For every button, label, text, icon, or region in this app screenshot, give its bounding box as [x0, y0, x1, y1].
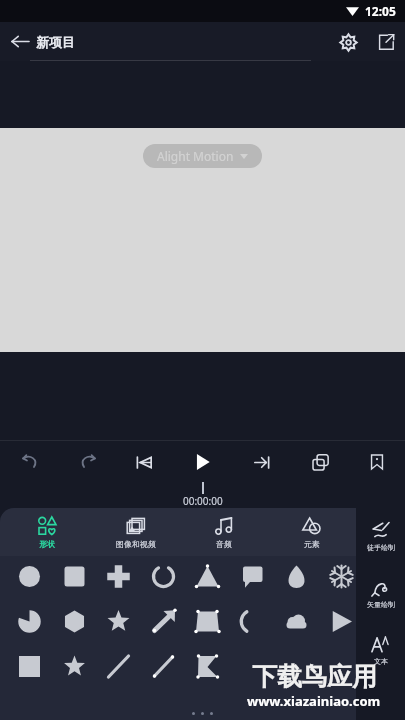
- staticText: www.xiazainiao.com: [247, 692, 381, 710]
- staticText: 新项目: [36, 34, 75, 50]
- staticText: 形状: [39, 539, 55, 549]
- button[interactable]: Shape 15: [276, 601, 316, 641]
- button[interactable]: Shape 18: [54, 646, 94, 686]
- staticText: 文本: [374, 657, 388, 666]
- button[interactable]: Shape 10: [54, 601, 94, 641]
- button[interactable]: Shape 3: [98, 556, 138, 596]
- button[interactable]: 图像和视频: [92, 508, 180, 556]
- button[interactable]: Settings: [329, 23, 367, 61]
- button[interactable]: Shape 11: [98, 601, 138, 641]
- staticText: 矢量绘制: [367, 600, 395, 609]
- button[interactable]: Shape 9: [9, 601, 49, 641]
- button[interactable]: Alight Motion: [143, 144, 262, 168]
- button[interactable]: Shape 1: [9, 556, 49, 596]
- staticText: Alight Motion: [157, 148, 234, 164]
- staticText: 00:00:00: [183, 494, 223, 508]
- button[interactable]: Shape 21: [187, 646, 227, 686]
- button[interactable]: Shape 12: [143, 601, 183, 641]
- button[interactable]: Loop: [301, 443, 339, 481]
- button[interactable]: 元素: [268, 508, 356, 556]
- button[interactable]: Shape 6: [232, 556, 272, 596]
- button[interactable]: 形状: [3, 508, 91, 556]
- button[interactable]: Shape 14: [232, 601, 272, 641]
- button[interactable]: Jump to start: [124, 443, 162, 481]
- button[interactable]: Undo: [11, 443, 49, 481]
- button[interactable]: 文本: [356, 622, 405, 679]
- button[interactable]: Shape 13: [187, 601, 227, 641]
- button[interactable]: Shape 17: [9, 646, 49, 686]
- button[interactable]: 徒手绘制: [356, 508, 405, 565]
- button[interactable]: 矢量绘制: [356, 565, 405, 622]
- staticText: 徒手绘制: [367, 543, 395, 552]
- button[interactable]: Shape 2: [54, 556, 94, 596]
- button[interactable]: Redo: [69, 443, 107, 481]
- staticText: 图像和视频: [116, 539, 156, 549]
- staticText: 下载鸟应用: [252, 661, 377, 692]
- button[interactable]: Shape 7: [276, 556, 316, 596]
- staticText: 元素: [304, 539, 320, 549]
- button[interactable]: Shape 4: [143, 556, 183, 596]
- staticText: 音频: [216, 539, 232, 549]
- button[interactable]: Shape 20: [143, 646, 183, 686]
- button[interactable]: Play: [184, 443, 222, 481]
- button[interactable]: Share: [367, 23, 405, 61]
- button[interactable]: Shape 5: [187, 556, 227, 596]
- button[interactable]: Shape 19: [98, 646, 138, 686]
- button[interactable]: Bookmark: [358, 443, 396, 481]
- button[interactable]: Jump to end: [243, 443, 281, 481]
- button[interactable]: Back: [0, 22, 40, 61]
- staticText: 12:05: [365, 3, 396, 19]
- button[interactable]: Shape 8: [321, 556, 356, 596]
- button[interactable]: Shape 16: [321, 601, 356, 641]
- button[interactable]: 音频: [180, 508, 268, 556]
